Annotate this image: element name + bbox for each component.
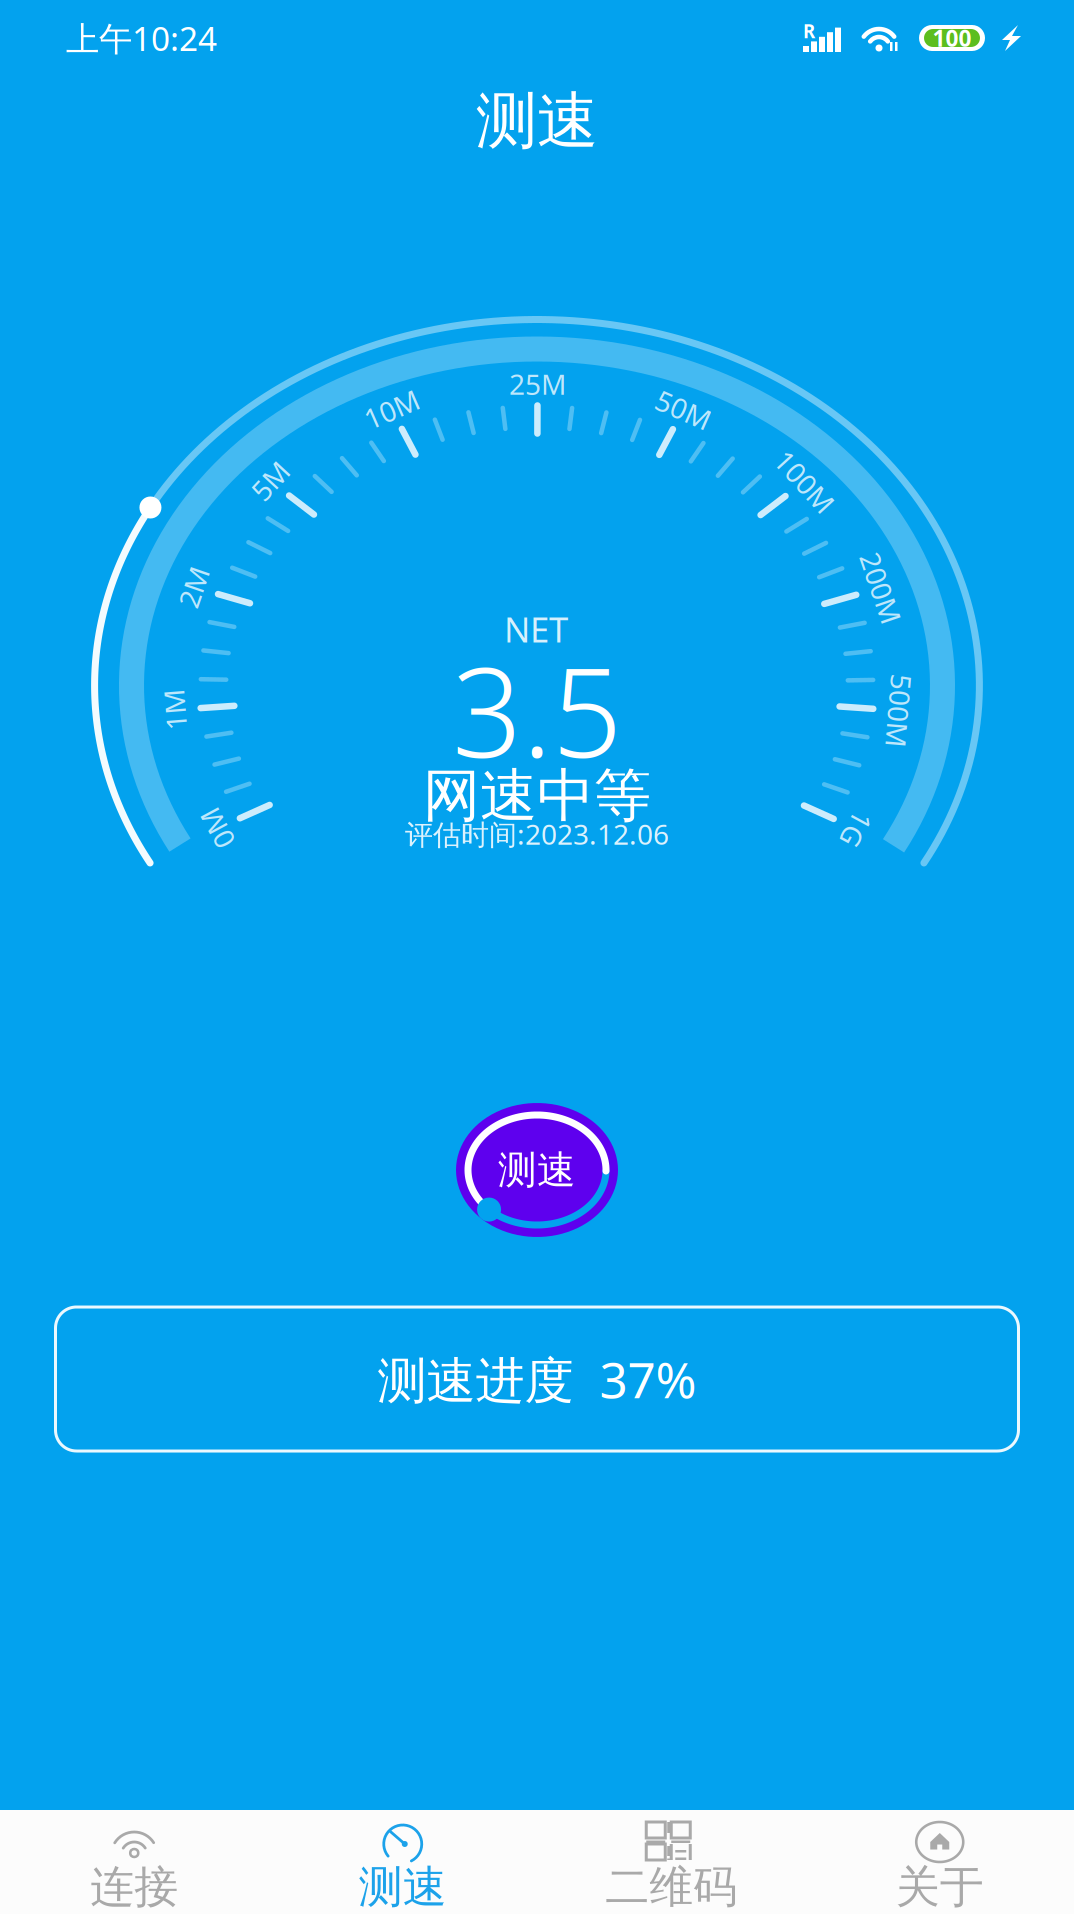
staticText: 5M	[250, 462, 291, 499]
staticText: R	[803, 19, 815, 43]
staticText: 200M	[844, 569, 917, 606]
button[interactable]: 连接	[0, 1811, 268, 1913]
staticText: 二维码	[605, 1860, 737, 1914]
staticText: NET	[504, 606, 568, 652]
staticText: 上午10:24	[66, 16, 217, 60]
button[interactable]: 测速	[268, 1811, 537, 1913]
button[interactable]: 关于	[805, 1811, 1074, 1913]
staticText: 25M	[509, 365, 566, 403]
button[interactable]: 测速进度 37%	[55, 1307, 1018, 1451]
staticText: 关于	[896, 1860, 984, 1914]
staticText: 测速	[476, 83, 598, 159]
button[interactable]: 测速	[0, 0, 1074, 1914]
button[interactable]: 二维码	[537, 1811, 805, 1913]
staticText: 1M	[154, 691, 195, 728]
staticText: 1G	[838, 810, 874, 848]
staticText: 100	[932, 23, 971, 53]
staticText: 测速进度 37%	[377, 1346, 696, 1412]
staticText: 连接	[90, 1860, 178, 1914]
staticText: 测速	[498, 1146, 576, 1194]
staticText: 2M	[173, 568, 214, 606]
staticText: 500M	[863, 692, 936, 729]
staticText: 3.5	[452, 629, 622, 791]
staticText: 测速	[359, 1860, 447, 1914]
staticText: 10M	[363, 391, 420, 428]
staticText: 网速中等	[423, 761, 651, 831]
staticText: 100M	[768, 463, 841, 500]
staticText: 50M	[655, 391, 712, 428]
staticText: 评估时间:2023.12.06	[405, 815, 669, 853]
staticText: 0M	[197, 810, 238, 847]
